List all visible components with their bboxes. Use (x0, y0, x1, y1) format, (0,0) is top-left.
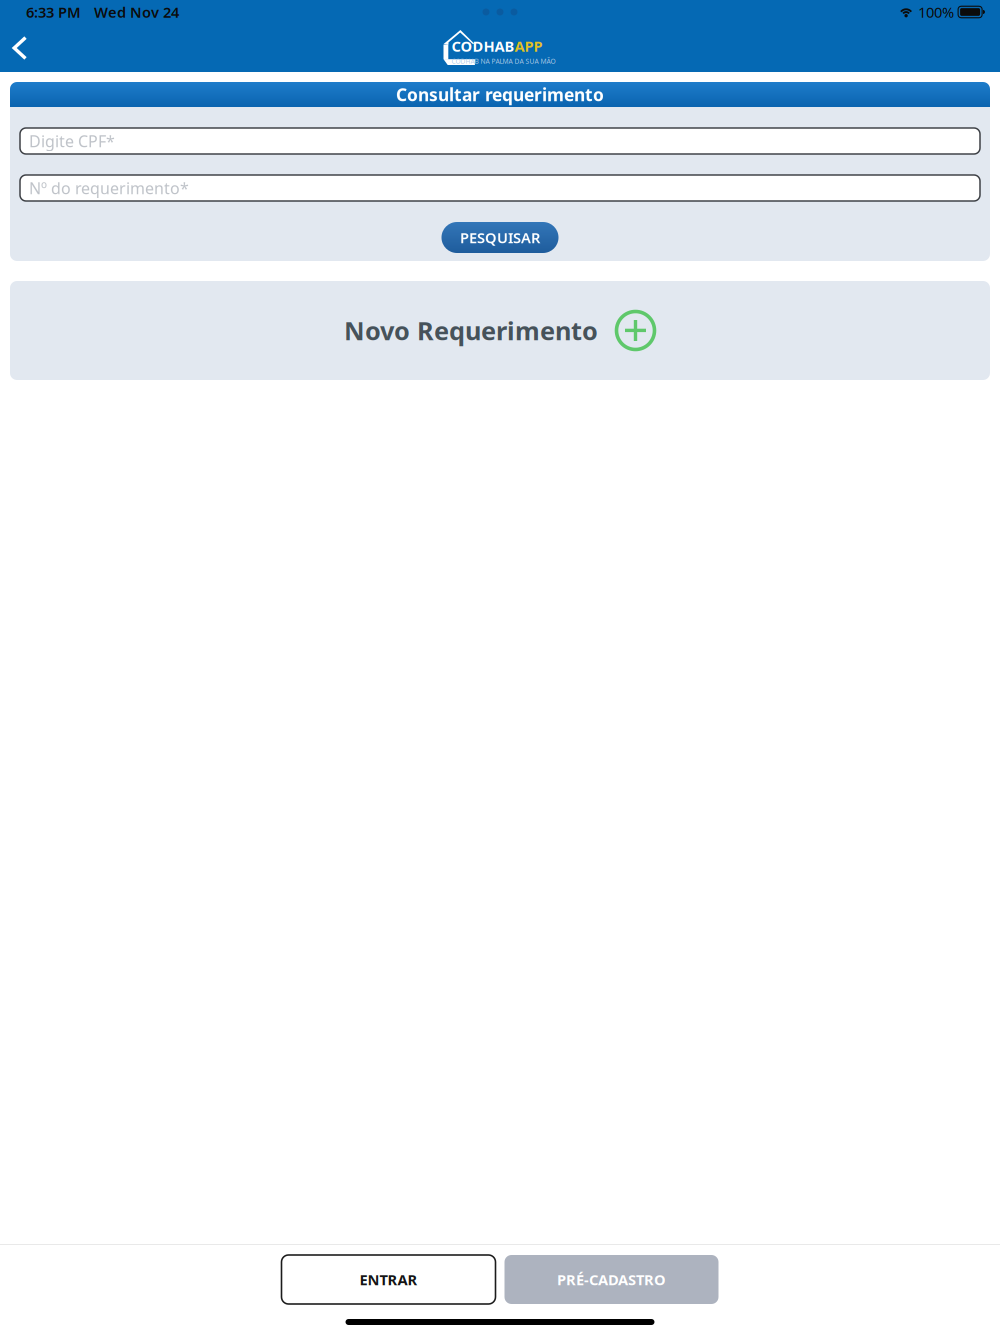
button[interactable]: PESQUISAR (441, 222, 558, 253)
staticText: 100% (918, 2, 954, 22)
staticText: 6:33 PM (26, 2, 81, 22)
staticText: CODHAB NA PALMA DA SUA MÃO (451, 57, 555, 66)
staticText: Nº do requerimento* (29, 177, 189, 199)
button[interactable]: ENTRAR (281, 1255, 495, 1304)
staticText: Novo Requerimento (344, 314, 598, 347)
button[interactable]: Novo Requerimento (10, 281, 990, 380)
staticText: CODHAB (451, 36, 514, 56)
staticText: PESQUISAR (460, 228, 540, 247)
staticText: Wed Nov 24 (94, 2, 179, 22)
staticText: Digite CPF* (29, 130, 115, 152)
staticText: ENTRAR (359, 1270, 417, 1289)
staticText: APP (514, 36, 542, 56)
staticText: Consultar requerimento (396, 83, 604, 106)
staticText: PRÉ-CADASTRO (557, 1270, 666, 1289)
button[interactable]: PRÉ-CADASTRO (504, 1255, 718, 1304)
button[interactable]: Back (0, 26, 42, 70)
